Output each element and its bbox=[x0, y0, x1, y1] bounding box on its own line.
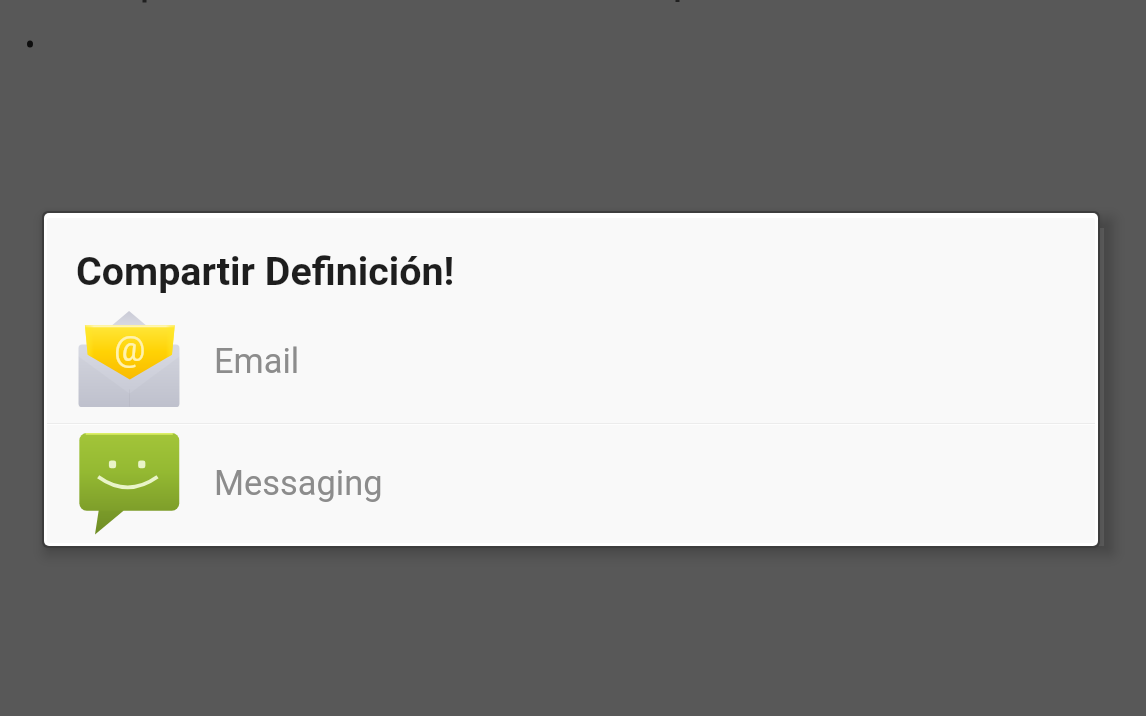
staticText: Messaging bbox=[214, 463, 383, 503]
staticText: Email bbox=[214, 341, 300, 381]
staticText: @ bbox=[114, 329, 146, 370]
button[interactable]: Messaging bbox=[47, 425, 1095, 543]
other: Email bbox=[78, 311, 181, 414]
staticText: Compartir Definición! bbox=[76, 248, 455, 294]
button[interactable]: Email bbox=[47, 301, 1095, 423]
other: Messaging bbox=[78, 433, 181, 536]
